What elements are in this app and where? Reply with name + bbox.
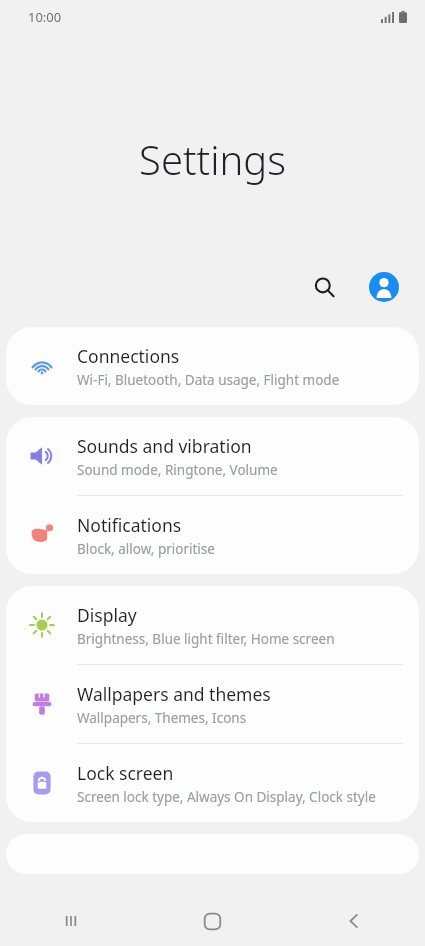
button[interactable]: Account [361,264,407,310]
staticText: Wi-Fi, Bluetooth, Data usage, Flight mod… [77,371,340,389]
staticText: Screen lock type, Always On Display, Clo… [77,788,376,806]
staticText: Sound mode, Ringtone, Volume [77,461,278,479]
button[interactable]: Notifications [6,496,419,574]
button[interactable]: Display [6,586,419,664]
button[interactable]: Search [301,264,347,310]
button[interactable]: Wallpapers and themes [6,665,419,743]
staticText: Lock screen [77,761,174,785]
staticText: Notifications [77,513,182,537]
staticText: Brightness, Blue light filter, Home scre… [77,630,335,648]
button[interactable]: Sounds and vibration [6,417,419,495]
staticText: 10:00 [28,8,62,26]
staticText: Connections [77,344,180,368]
staticText: Settings [0,132,425,186]
staticText: Sounds and vibration [77,434,252,458]
staticText: Wallpapers and themes [77,682,271,706]
staticText: Display [77,603,137,627]
button[interactable]: Lock screen [6,744,419,822]
button[interactable]: Back [283,896,425,946]
staticText: Wallpapers, Themes, Icons [77,709,247,727]
staticText: Block, allow, prioritise [77,540,215,558]
button[interactable]: Home [141,896,283,946]
button[interactable]: Recents [0,896,141,946]
button[interactable]: Connections [6,327,419,405]
